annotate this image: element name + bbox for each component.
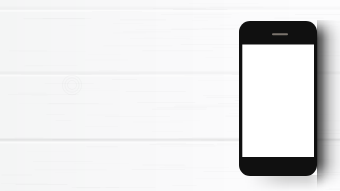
- button[interactable]: Blank phone display: [242, 45, 314, 158]
- button[interactable]: Smartphone with blank screen: [239, 21, 317, 176]
